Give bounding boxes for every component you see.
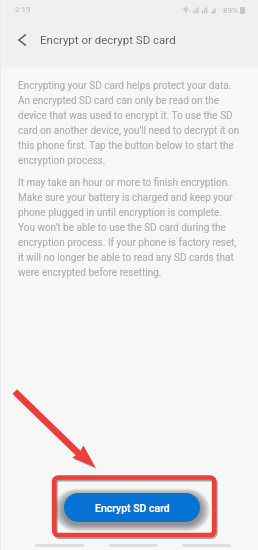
staticText: Encrypt SD card bbox=[95, 502, 170, 514]
staticText: Encrypt or decrypt SD card bbox=[40, 33, 176, 46]
staticText: It may take an hour or more to finish en… bbox=[18, 177, 240, 278]
staticText: 2:19 bbox=[15, 5, 31, 14]
staticText: 89% bbox=[223, 6, 238, 15]
button[interactable]: Encrypt SD card bbox=[64, 493, 200, 522]
button[interactable]: Back bbox=[8, 28, 36, 52]
staticText: Encrypting your SD card helps protect yo… bbox=[18, 80, 240, 166]
